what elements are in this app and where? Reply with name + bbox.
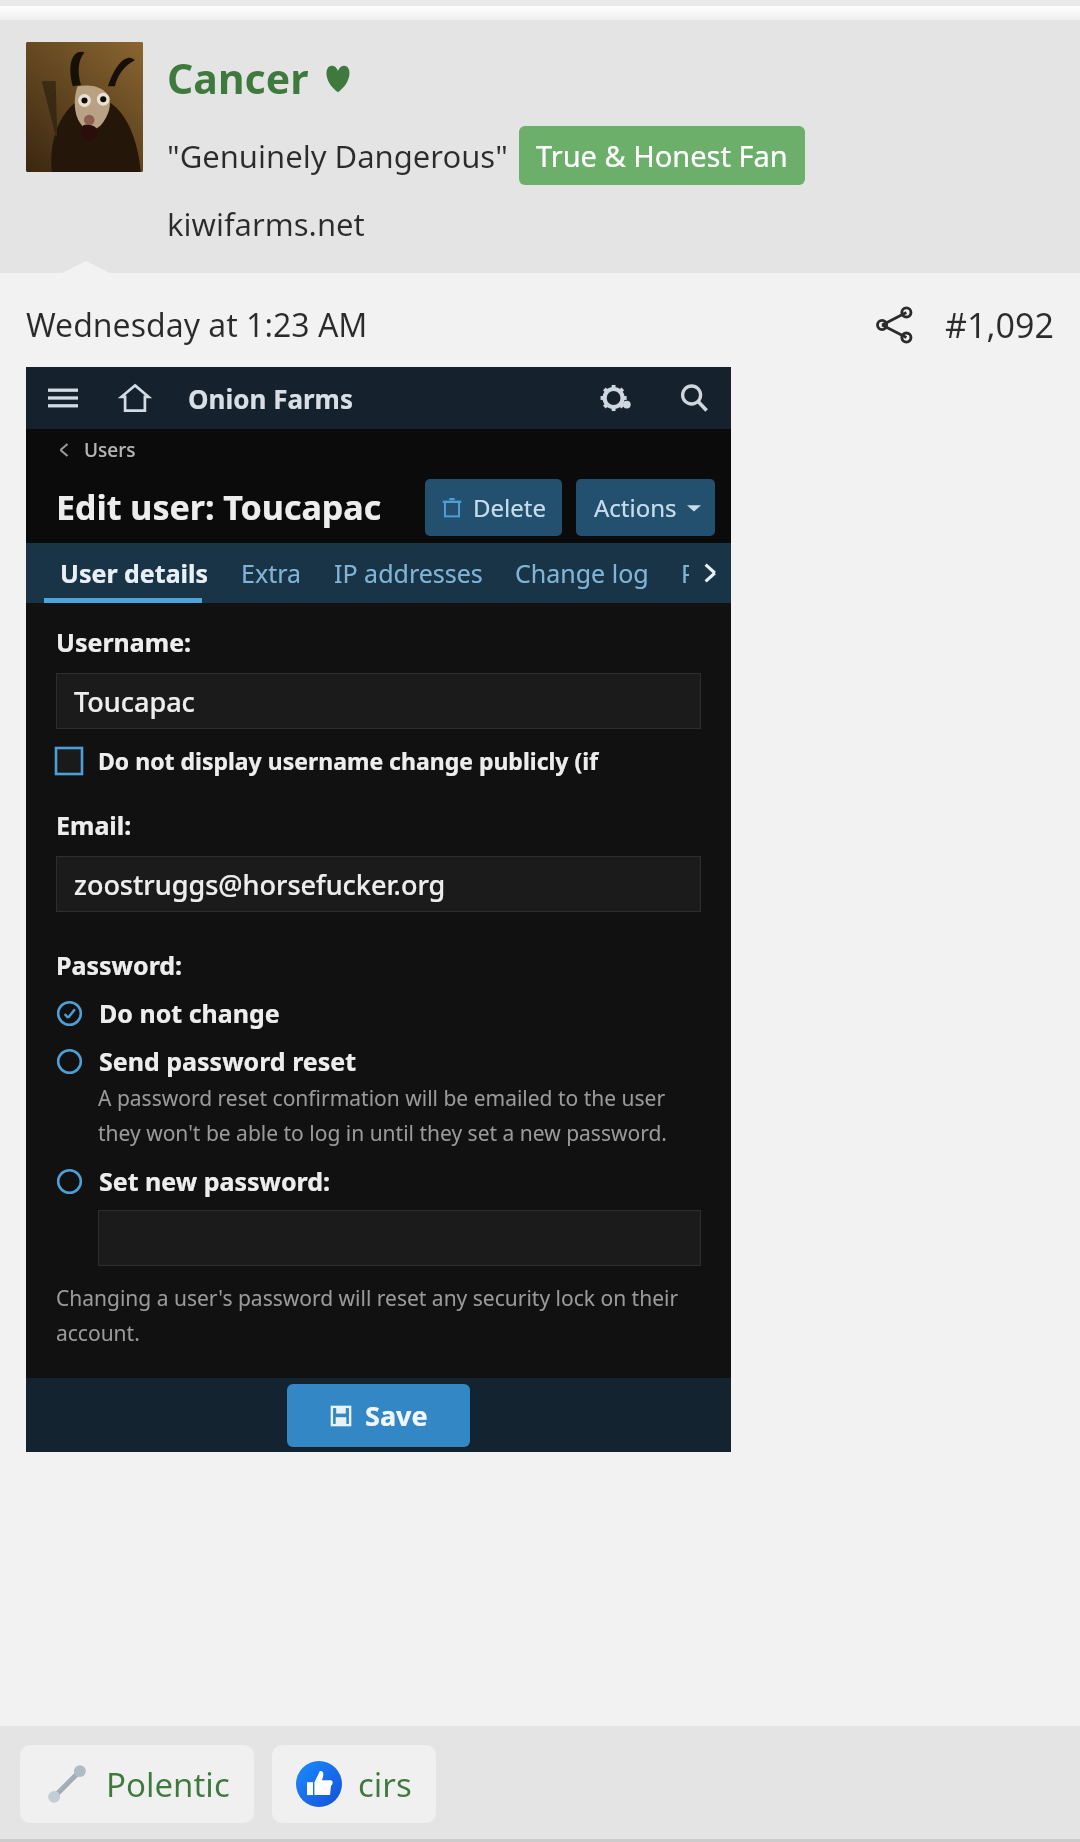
staticText: Users xyxy=(84,437,136,463)
button[interactable]: Delete xyxy=(425,479,562,536)
staticText: cirs xyxy=(358,1762,412,1807)
staticText: Do not change xyxy=(99,996,280,1030)
staticText: Username: xyxy=(56,625,192,659)
button[interactable]: IP addresses xyxy=(318,543,499,603)
button[interactable]: Change log xyxy=(499,543,665,603)
button[interactable]: Avatar xyxy=(26,42,143,172)
staticText: True & Honest Fan xyxy=(536,136,788,175)
button[interactable] xyxy=(98,1210,701,1266)
staticText: Extra xyxy=(241,556,302,590)
staticText: IP addresses xyxy=(334,556,483,590)
staticText: Changing a user's password will reset an… xyxy=(56,1284,679,1313)
staticText: zoostruggs@horsefucker.org xyxy=(74,866,446,903)
button[interactable]: Do not change xyxy=(56,996,280,1030)
button[interactable]: cirs xyxy=(272,1745,436,1823)
button[interactable]: True & Honest Fan xyxy=(519,126,805,185)
staticText: User details xyxy=(60,556,209,590)
button[interactable]: Save xyxy=(287,1384,470,1447)
staticText: Change log xyxy=(515,556,649,590)
staticText: Set new password: xyxy=(99,1164,331,1198)
staticText: Do not display username change publicly … xyxy=(98,745,701,776)
button[interactable]: #1,092 xyxy=(945,302,1054,348)
button[interactable]: Wednesday at 1:23 AM xyxy=(26,303,368,347)
button[interactable]: Pe xyxy=(665,543,727,603)
button[interactable]: Do not display username change publicly … xyxy=(56,745,701,776)
button[interactable]: Set new password: xyxy=(56,1164,331,1198)
staticText: Toucapac xyxy=(74,683,195,720)
staticText: account. xyxy=(56,1319,140,1348)
button[interactable]: zoostruggs@horsefucker.org xyxy=(56,856,701,912)
button[interactable]: User details xyxy=(44,543,225,603)
staticText: "Genuinely Dangerous" xyxy=(167,135,508,177)
button[interactable]: Polentic xyxy=(20,1745,254,1823)
button[interactable]: Toucapac xyxy=(56,673,701,729)
button[interactable]: Actions xyxy=(576,479,715,536)
button[interactable]: Share xyxy=(869,299,921,351)
staticText: Save xyxy=(365,1397,428,1434)
staticText: Onion Farms xyxy=(188,381,354,416)
staticText: Password: xyxy=(56,948,183,982)
staticText: Pe xyxy=(681,556,711,590)
staticText: Actions xyxy=(594,491,677,524)
staticText: Send password reset xyxy=(99,1044,357,1078)
button[interactable]: kiwifarms.net xyxy=(167,203,365,245)
button[interactable]: Extra xyxy=(225,543,318,603)
button[interactable]: Cancer xyxy=(167,50,309,106)
staticText: Delete xyxy=(473,491,546,524)
staticText: Email: xyxy=(56,808,132,842)
staticText: Polentic xyxy=(106,1762,230,1807)
staticText: A password reset confirmation will be em… xyxy=(98,1084,701,1113)
button[interactable]: Send password reset xyxy=(56,1044,357,1078)
button[interactable]: More tabs xyxy=(689,543,731,603)
button[interactable]: Screenshot attachment xyxy=(26,367,731,1452)
staticText: Edit user: Toucapac xyxy=(56,484,382,530)
staticText: they won't be able to log in until they … xyxy=(98,1119,667,1148)
